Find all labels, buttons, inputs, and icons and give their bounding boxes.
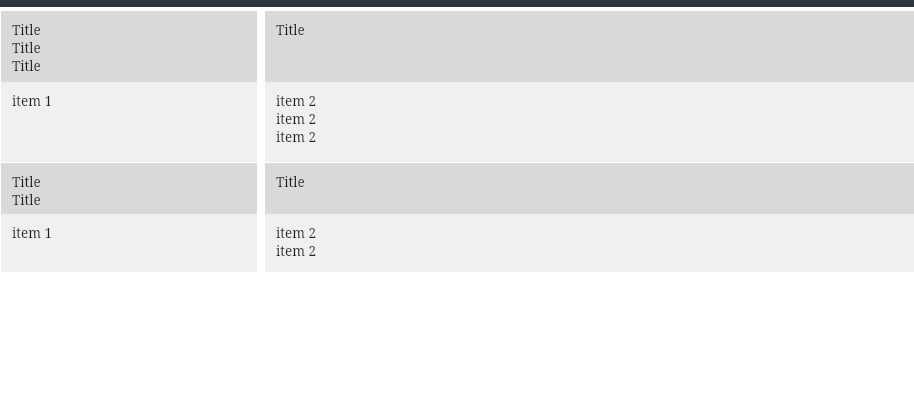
button[interactable]: item 2 bbox=[265, 82, 914, 162]
staticText: item 2 bbox=[276, 242, 317, 260]
staticText: Title bbox=[12, 39, 41, 57]
button[interactable]: Title bbox=[265, 11, 914, 82]
staticText: item 1 bbox=[12, 224, 53, 242]
button[interactable]: Title bbox=[1, 11, 257, 82]
staticText: item 2 bbox=[276, 92, 317, 110]
button[interactable]: item 1 bbox=[1, 214, 257, 272]
staticText: Title bbox=[12, 191, 41, 209]
button[interactable]: item 2 bbox=[265, 214, 914, 272]
staticText: Title bbox=[12, 173, 41, 191]
staticText: item 2 bbox=[276, 110, 317, 128]
button[interactable]: Title bbox=[1, 163, 257, 214]
staticText: Title bbox=[276, 21, 305, 39]
button[interactable]: Title bbox=[265, 163, 914, 214]
staticText: Title bbox=[12, 21, 41, 39]
staticText: Title bbox=[276, 173, 305, 191]
staticText: item 2 bbox=[276, 224, 317, 242]
staticText: item 2 bbox=[276, 128, 317, 146]
button[interactable]: item 1 bbox=[1, 82, 257, 162]
staticText: item 1 bbox=[12, 92, 53, 110]
staticText: Title bbox=[12, 57, 41, 75]
